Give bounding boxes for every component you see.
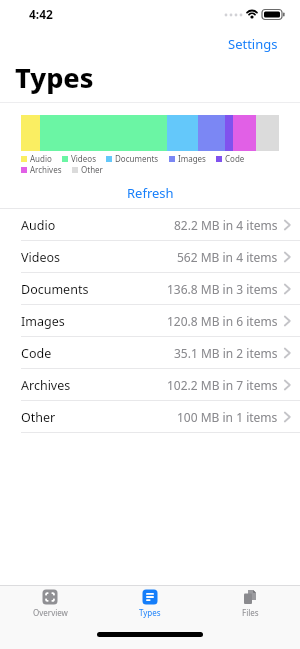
staticText: 35.1 MB in 2 items: [174, 345, 278, 361]
button[interactable]: Settings: [228, 35, 278, 53]
staticText: Documents: [115, 153, 159, 164]
staticText: Refresh: [127, 184, 174, 202]
staticText: Settings: [228, 35, 278, 53]
staticText: 120.8 MB in 6 items: [167, 313, 278, 329]
staticText: Overview: [33, 607, 68, 618]
button[interactable]: Overview: [0, 589, 100, 618]
staticText: Videos: [21, 249, 61, 266]
staticText: 136.8 MB in 3 items: [167, 281, 278, 297]
staticText: Images: [21, 313, 65, 330]
staticText: 102.2 MB in 7 items: [167, 377, 278, 393]
staticText: Archives: [30, 164, 62, 175]
staticText: Types: [15, 59, 94, 96]
button[interactable]: Refresh: [127, 184, 174, 202]
staticText: Audio: [30, 153, 52, 164]
staticText: Images: [178, 153, 206, 164]
staticText: Files: [242, 607, 259, 618]
staticText: Types: [139, 607, 161, 618]
staticText: Archives: [21, 377, 71, 394]
button[interactable]: Videos: [0, 241, 300, 273]
button[interactable]: Code: [0, 337, 300, 369]
button[interactable]: Files: [200, 589, 300, 618]
staticText: Audio: [21, 217, 56, 234]
staticText: Other: [21, 409, 56, 426]
staticText: 100 MB in 1 items: [177, 409, 278, 425]
button[interactable]: Other: [0, 401, 300, 433]
staticText: Videos: [71, 153, 96, 164]
staticText: Code: [21, 345, 52, 362]
staticText: 82.2 MB in 4 items: [174, 217, 278, 233]
button[interactable]: Types: [100, 589, 200, 618]
button[interactable]: Archives: [0, 369, 300, 401]
staticText: 562 MB in 4 items: [177, 249, 278, 265]
staticText: Code: [225, 153, 245, 164]
staticText: Documents: [21, 281, 89, 298]
button[interactable]: Audio: [0, 209, 300, 241]
button[interactable]: Images: [0, 305, 300, 337]
button[interactable]: Documents: [0, 273, 300, 305]
staticText: Other: [81, 164, 103, 175]
staticText: 4:42: [29, 6, 53, 22]
